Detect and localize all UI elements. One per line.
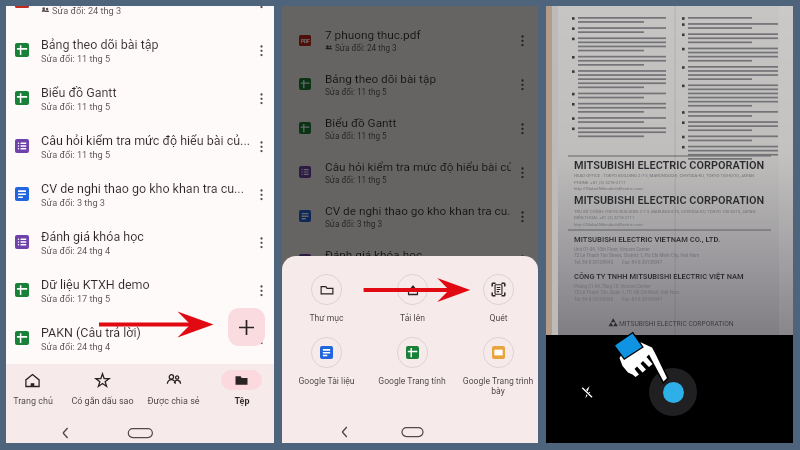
button[interactable]: Tùy chọn bbox=[511, 20, 533, 60]
button[interactable]: Đánh giá khóa học bbox=[293, 238, 533, 282]
staticText: PDF bbox=[301, 39, 310, 45]
button[interactable]: Tùy chọn bbox=[250, 6, 272, 22]
button[interactable]: Câu hỏi kiểm tra mức độ hiểu bài củ... bbox=[10, 124, 272, 168]
button[interactable]: Tùy chọn bbox=[511, 108, 533, 148]
staticText: Tel: 84 8 39105945 Fax: 84 8 39105947 bbox=[574, 260, 663, 265]
staticText: Sửa đổi: 17 thg 5 bbox=[325, 307, 387, 317]
button[interactable]: Tùy chọn bbox=[250, 78, 272, 118]
button[interactable]: Google Trang trình bày bbox=[456, 337, 538, 397]
staticText: Biểu đồ Gantt bbox=[41, 85, 117, 100]
staticText: Google Trang tính bbox=[378, 376, 446, 386]
staticText: http://Global.MitsubishiElectric.com bbox=[574, 222, 643, 227]
button[interactable]: Tùy chọn bbox=[511, 64, 533, 104]
staticText: Đánh giá khóa học bbox=[41, 229, 144, 244]
staticText: MITSUBISHI ELECTRIC CORPORATION bbox=[574, 194, 765, 207]
staticText: Sửa đổi: 11 thg 5 bbox=[41, 149, 111, 160]
staticText: Sửa đổi: 24 thg 3 bbox=[335, 43, 397, 53]
button[interactable]: Tùy chọn bbox=[250, 270, 272, 310]
staticText: Sửa đổi: 24 thg 4 bbox=[41, 341, 111, 352]
button[interactable]: PDF bbox=[293, 18, 533, 62]
button[interactable]: Tùy chọn bbox=[511, 240, 533, 280]
button[interactable]: Tùy chọn bbox=[250, 30, 272, 70]
staticText: TRỤ SỞ CHÍNH: TOKYO BUILDING 2-7-3, MARU… bbox=[574, 209, 756, 214]
staticText: Google Trang trình bày bbox=[456, 376, 538, 396]
staticText: Sửa đổi: 11 thg 5 bbox=[41, 53, 111, 64]
button[interactable]: Dữ liệu KTXH demo bbox=[10, 268, 272, 312]
button[interactable]: Chụp ảnh bbox=[649, 368, 697, 416]
button[interactable]: Trang chủ bbox=[6, 370, 66, 418]
staticText: Tel: 84 8 39105945 Fax: 84 8 39105947 bbox=[574, 297, 663, 302]
staticText: Sửa đổi: 24 thg 4 bbox=[41, 245, 111, 256]
button[interactable]: Tùy chọn bbox=[250, 126, 272, 166]
button[interactable]: PDF bbox=[10, 6, 272, 24]
button[interactable]: Được chia sẻ bbox=[139, 370, 207, 418]
staticText: Thư mục bbox=[309, 313, 344, 323]
button[interactable]: Biểu đồ Gantt bbox=[10, 76, 272, 120]
button[interactable]: Dữ liệu KTXH demo bbox=[293, 282, 533, 326]
staticText: Sửa đổi: 11 thg 5 bbox=[41, 101, 111, 112]
staticText: Sửa đổi: 11 thg 5 bbox=[325, 131, 387, 141]
button[interactable]: Tùy chọn bbox=[250, 222, 272, 262]
button[interactable]: Bảng theo dõi bài tập bbox=[10, 28, 272, 72]
staticText: Tải lên bbox=[400, 313, 425, 323]
staticText: Unit 01-04, 10th Floor, Vincom Center bbox=[574, 247, 650, 252]
staticText: Sửa đổi: 17 thg 5 bbox=[41, 293, 111, 304]
staticText: 72 Lê Thánh Tôn, Quận 1, TP. Hồ Chí Minh… bbox=[574, 290, 680, 295]
staticText: Quét bbox=[489, 313, 508, 323]
staticText: http://Global.MitsubishiElectric.com bbox=[574, 186, 643, 191]
staticText: MITSUBISHI ELECTRIC VIETNAM CO., LTD. bbox=[574, 235, 721, 244]
staticText: Có gắn dấu sao bbox=[71, 396, 134, 407]
button[interactable]: Tùy chọn bbox=[250, 174, 272, 214]
staticText: Phòng 01-04, Tầng 10, Vincom Center bbox=[574, 284, 651, 289]
button[interactable]: Google Tài liệu bbox=[284, 337, 368, 397]
staticText: Đánh giá khóa học bbox=[325, 248, 423, 262]
staticText: Dữ liệu KTXH demo bbox=[41, 277, 150, 292]
button[interactable]: Google Trang tính bbox=[370, 337, 454, 397]
button[interactable]: Quét bbox=[456, 274, 538, 334]
button[interactable]: Bảng theo dõi bài tập bbox=[293, 62, 533, 106]
button[interactable]: Biểu đồ Gantt bbox=[293, 106, 533, 150]
staticText: CV de nghi thao go kho khan tra cu... bbox=[41, 181, 244, 196]
staticText: Sửa đổi: 24 thg 3 bbox=[52, 6, 122, 16]
button[interactable]: Tải lên bbox=[370, 274, 454, 334]
button[interactable]: CV de nghi thao go kho khan tra cu... bbox=[293, 194, 533, 238]
button[interactable]: Đánh giá khóa học bbox=[10, 220, 272, 264]
button[interactable]: Tùy chọn bbox=[250, 318, 272, 358]
staticText: Bảng theo dõi bài tập bbox=[41, 37, 159, 52]
button[interactable]: PAKN (Câu trả lời) bbox=[10, 316, 272, 360]
staticText: Sửa đổi: 11 thg 5 bbox=[325, 87, 387, 97]
staticText: Sửa đổi: 3 thg 3 bbox=[325, 219, 383, 229]
staticText: MITSUBISHI ELECTRIC CORPORATION bbox=[574, 159, 765, 172]
staticText: Câu hỏi kiểm tra mức độ hiểu bài củ... bbox=[325, 160, 511, 174]
staticText: 7 phuong thuc.pdf bbox=[325, 28, 421, 42]
staticText: Được chia sẻ bbox=[147, 396, 200, 407]
button[interactable]: Có gắn dấu sao bbox=[68, 370, 136, 418]
staticText: Sửa đổi: 3 thg 3 bbox=[41, 197, 105, 208]
staticText: CV de nghi thao go kho khan tra cu... bbox=[325, 204, 511, 218]
staticText: CÔNG TY TNHH MITSUBISHI ELECTRIC VIỆT NA… bbox=[574, 272, 744, 281]
button[interactable]: Thư mục bbox=[284, 274, 368, 334]
button[interactable]: Tùy chọn bbox=[511, 196, 533, 236]
staticText: Sửa đổi: 11 thg 5 bbox=[325, 175, 387, 185]
staticText: Trang chủ bbox=[13, 396, 53, 407]
button[interactable]: Tệp bbox=[207, 370, 274, 418]
staticText: PHONE: +81 (3) 3218-2111 bbox=[574, 180, 626, 185]
staticText: Bảng theo dõi bài tập bbox=[325, 72, 437, 86]
staticText: HEAD OFFICE : TOKYO BUILDING 2-7-3, MARU… bbox=[574, 173, 755, 178]
staticText: 72 Le Thanh Ton Street, District 1, Ho C… bbox=[574, 253, 700, 258]
button[interactable]: Tắt đèn flash bbox=[580, 385, 594, 399]
button[interactable]: CV de nghi thao go kho khan tra cu... bbox=[10, 172, 272, 216]
staticText: PAKN (Câu trả lời) bbox=[41, 325, 141, 340]
button[interactable]: Tạo mới bbox=[228, 308, 265, 346]
staticText: Tệp bbox=[234, 396, 250, 407]
staticText: Dữ liệu KTXH demo bbox=[325, 292, 428, 306]
button[interactable]: Câu hỏi kiểm tra mức độ hiểu bài củ... bbox=[293, 150, 533, 194]
button[interactable]: Tùy chọn bbox=[511, 152, 533, 192]
staticText: Câu hỏi kiểm tra mức độ hiểu bài củ... bbox=[41, 133, 250, 148]
staticText: ĐIỆN THOẠI: +81 (3) 3218-2111 bbox=[574, 215, 635, 220]
staticText: Google Tài liệu bbox=[298, 376, 355, 386]
staticText: MITSUBISHI ELECTRIC CORPORATION bbox=[619, 320, 734, 328]
